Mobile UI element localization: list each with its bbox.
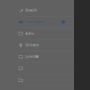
- button[interactable]: Junk E-Mail: [0, 51, 74, 63]
- staticText: Entwürfe: [25, 9, 37, 12]
- button[interactable]: Archiv: [0, 28, 74, 40]
- button[interactable]: Posteingang: [0, 16, 74, 28]
- staticText: Posteingang: [25, 20, 43, 24]
- staticText: Archiv: [25, 32, 33, 35]
- button[interactable]: Entwürfe: [0, 5, 74, 16]
- staticText: Junk E-Mail: [25, 55, 39, 58]
- staticText: Gelöschte: [25, 43, 39, 47]
- button[interactable]: Gelöschte: [0, 40, 74, 51]
